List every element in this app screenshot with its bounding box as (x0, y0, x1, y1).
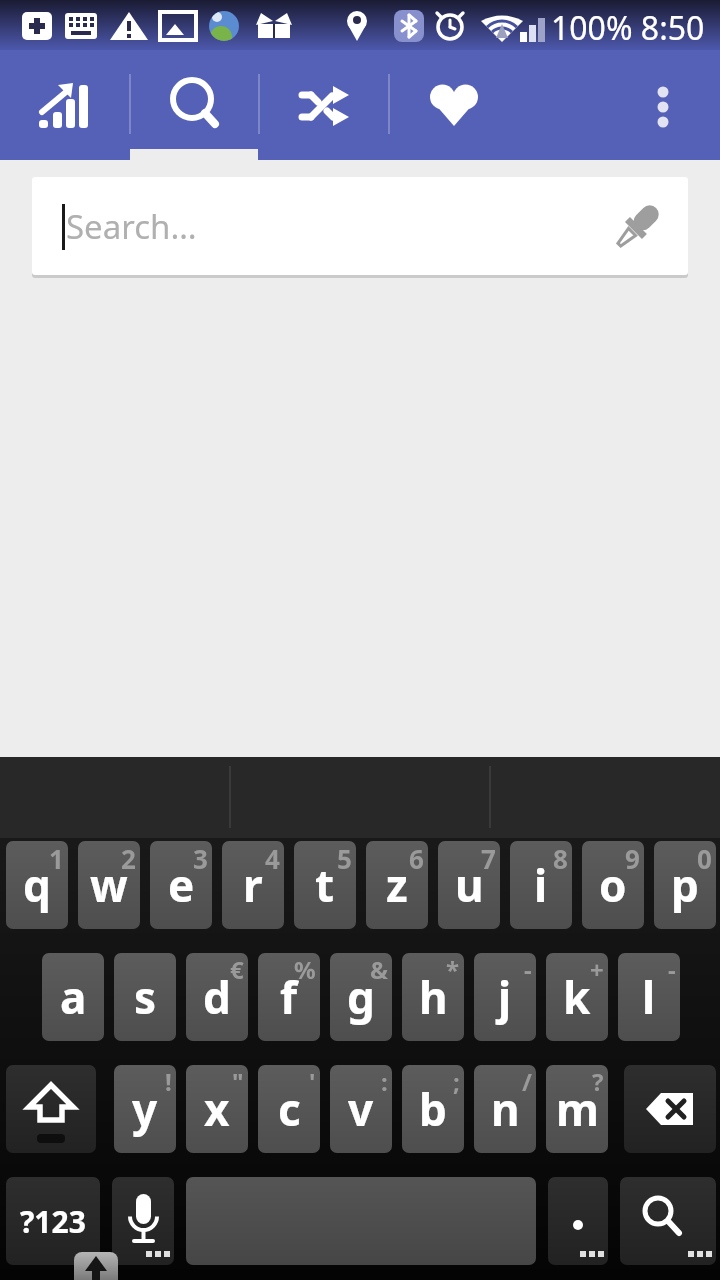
button[interactable] (259, 50, 388, 160)
button[interactable]: z (366, 841, 428, 929)
staticText: : (381, 1065, 388, 1098)
staticText: r (243, 855, 263, 915)
staticText: + (590, 953, 604, 986)
staticText: - (524, 953, 532, 986)
button[interactable]: l (618, 953, 680, 1041)
staticText: v (348, 1079, 374, 1139)
button[interactable]: v (330, 1065, 392, 1153)
staticText: ' (309, 1065, 316, 1098)
button[interactable] (112, 1177, 174, 1265)
button[interactable]: y (114, 1065, 176, 1153)
button[interactable] (186, 1177, 536, 1265)
staticText: x (204, 1079, 230, 1139)
button[interactable]: s (114, 953, 176, 1041)
button[interactable]: Search… (32, 177, 688, 275)
staticText: d (203, 967, 231, 1027)
button[interactable] (130, 50, 258, 160)
staticText: f (280, 967, 298, 1027)
staticText: w (90, 855, 128, 915)
staticText: c (278, 1079, 301, 1139)
staticText: ! (165, 1065, 172, 1098)
button[interactable]: j (474, 953, 536, 1041)
button[interactable]: k (546, 953, 608, 1041)
button[interactable] (74, 1252, 118, 1280)
staticText: z (386, 855, 408, 915)
staticText: 1 (49, 841, 64, 876)
staticText: 9 (625, 841, 640, 876)
staticText: k (563, 967, 591, 1027)
staticText: * (446, 953, 460, 986)
button[interactable]: m (546, 1065, 608, 1153)
staticText: 7 (481, 841, 496, 876)
button[interactable]: t (294, 841, 356, 929)
button[interactable]: b (402, 1065, 464, 1153)
staticText: m (556, 1079, 599, 1139)
button[interactable]: r (222, 841, 284, 929)
button[interactable] (624, 1065, 716, 1153)
staticText: 2 (121, 841, 136, 876)
staticText: - (668, 953, 676, 986)
button[interactable]: g (330, 953, 392, 1041)
staticText: 4 (265, 841, 280, 876)
button[interactable]: c (258, 1065, 320, 1153)
staticText: e (168, 855, 195, 915)
staticText: h (419, 967, 448, 1027)
button[interactable]: u (438, 841, 500, 929)
staticText: Search… (66, 204, 197, 249)
staticText: s (134, 967, 157, 1027)
button[interactable]: d (186, 953, 248, 1041)
button[interactable]: h (402, 953, 464, 1041)
button[interactable]: x (186, 1065, 248, 1153)
button[interactable]: w (78, 841, 140, 929)
button[interactable] (6, 1065, 96, 1153)
staticText: 0 (697, 841, 712, 876)
staticText: i (534, 855, 548, 915)
button[interactable] (620, 1177, 716, 1265)
button[interactable] (633, 50, 693, 160)
button[interactable]: p (654, 841, 716, 929)
staticText: 6 (409, 841, 424, 876)
button[interactable]: o (582, 841, 644, 929)
staticText: u (455, 855, 484, 915)
staticText: ; (453, 1065, 460, 1098)
staticText: o (599, 855, 627, 915)
staticText: n (491, 1079, 520, 1139)
staticText: y (132, 1079, 158, 1139)
button[interactable]: n (474, 1065, 536, 1153)
staticText: q (23, 855, 51, 915)
button[interactable] (0, 50, 129, 160)
staticText: t (315, 855, 335, 915)
staticText: / (522, 1065, 532, 1098)
staticText: a (60, 967, 87, 1027)
staticText: & (370, 953, 388, 986)
staticText: € (230, 953, 244, 986)
staticText: p (671, 855, 699, 915)
button[interactable]: ?123 (6, 1177, 100, 1265)
staticText: b (419, 1079, 447, 1139)
button[interactable]: i (510, 841, 572, 929)
staticText: ?123 (20, 1201, 86, 1242)
button[interactable]: f (258, 953, 320, 1041)
button[interactable]: a (42, 953, 104, 1041)
staticText: 100% 8:50 (551, 6, 705, 50)
button[interactable]: e (150, 841, 212, 929)
staticText: j (498, 967, 512, 1027)
staticText: 8 (553, 841, 568, 876)
staticText: 3 (193, 841, 208, 876)
staticText: 5 (337, 841, 352, 876)
staticText: l (642, 967, 656, 1027)
staticText: g (347, 967, 375, 1027)
button[interactable] (389, 50, 518, 160)
staticText: % (294, 953, 316, 986)
button[interactable] (548, 1177, 608, 1265)
staticText: " (232, 1065, 244, 1098)
staticText: ? (592, 1065, 604, 1098)
button[interactable]: q (6, 841, 68, 929)
